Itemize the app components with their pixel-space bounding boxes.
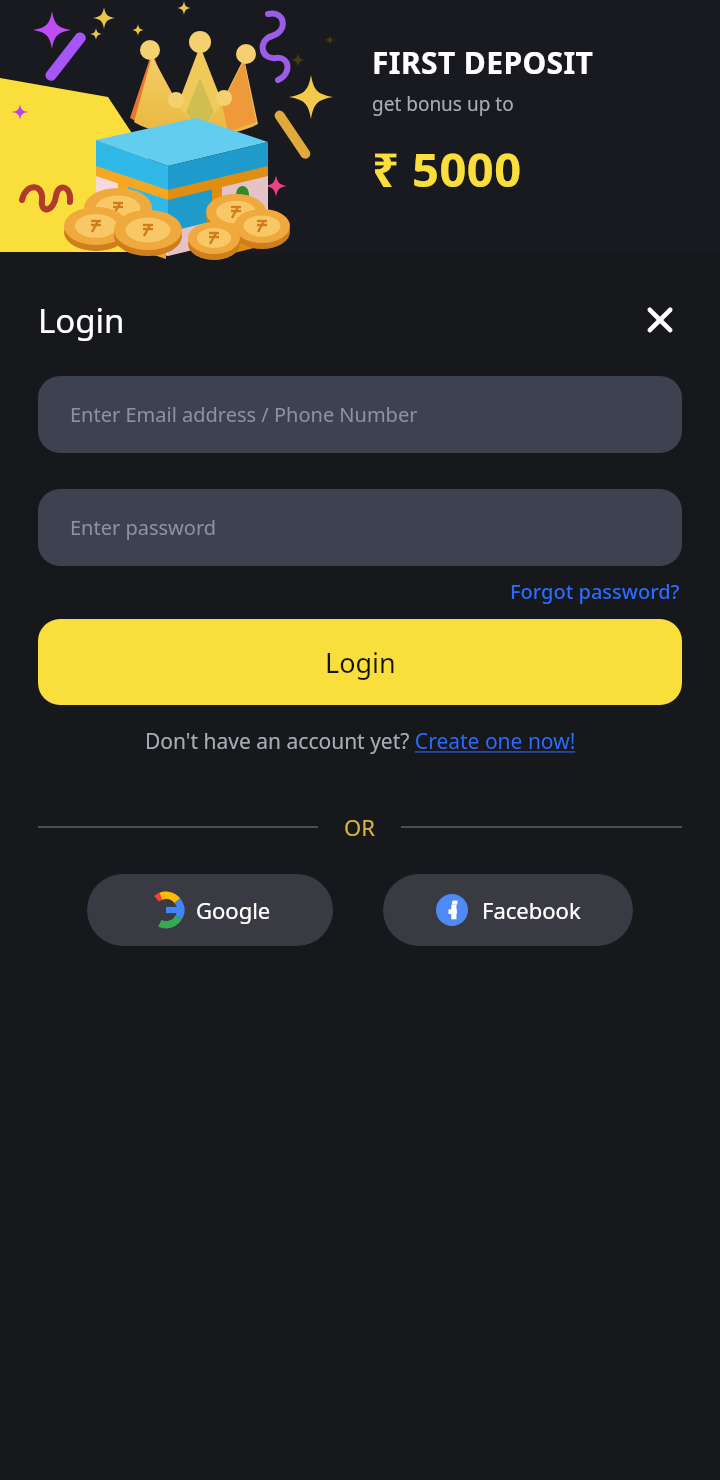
staticText: Login [38,298,125,343]
button[interactable]: Close [636,296,684,344]
button[interactable]: Enter password [38,489,682,566]
staticText: Facebook [482,895,581,925]
staticText: Don't have an account yet? Create one no… [145,727,576,756]
button[interactable]: Login [38,619,682,705]
staticText: OR [344,812,375,842]
staticText: Enter Email address / Phone Number [70,401,418,428]
button[interactable]: Google [87,874,333,946]
button[interactable]: Facebook [383,874,633,946]
button[interactable]: Forgot password? [508,576,682,607]
staticText: Google [196,895,271,925]
staticText: Enter password [70,514,217,541]
button[interactable]: Don't have an account yet? Create one no… [0,727,720,756]
staticText: FIRST DEPOSIT [372,42,594,83]
staticText: get bonus up to [372,91,514,117]
button[interactable]: Enter Email address / Phone Number [38,376,682,453]
staticText: Forgot password? [510,578,680,605]
staticText: ₹ 5000 [372,137,522,201]
staticText: Login [325,644,396,681]
